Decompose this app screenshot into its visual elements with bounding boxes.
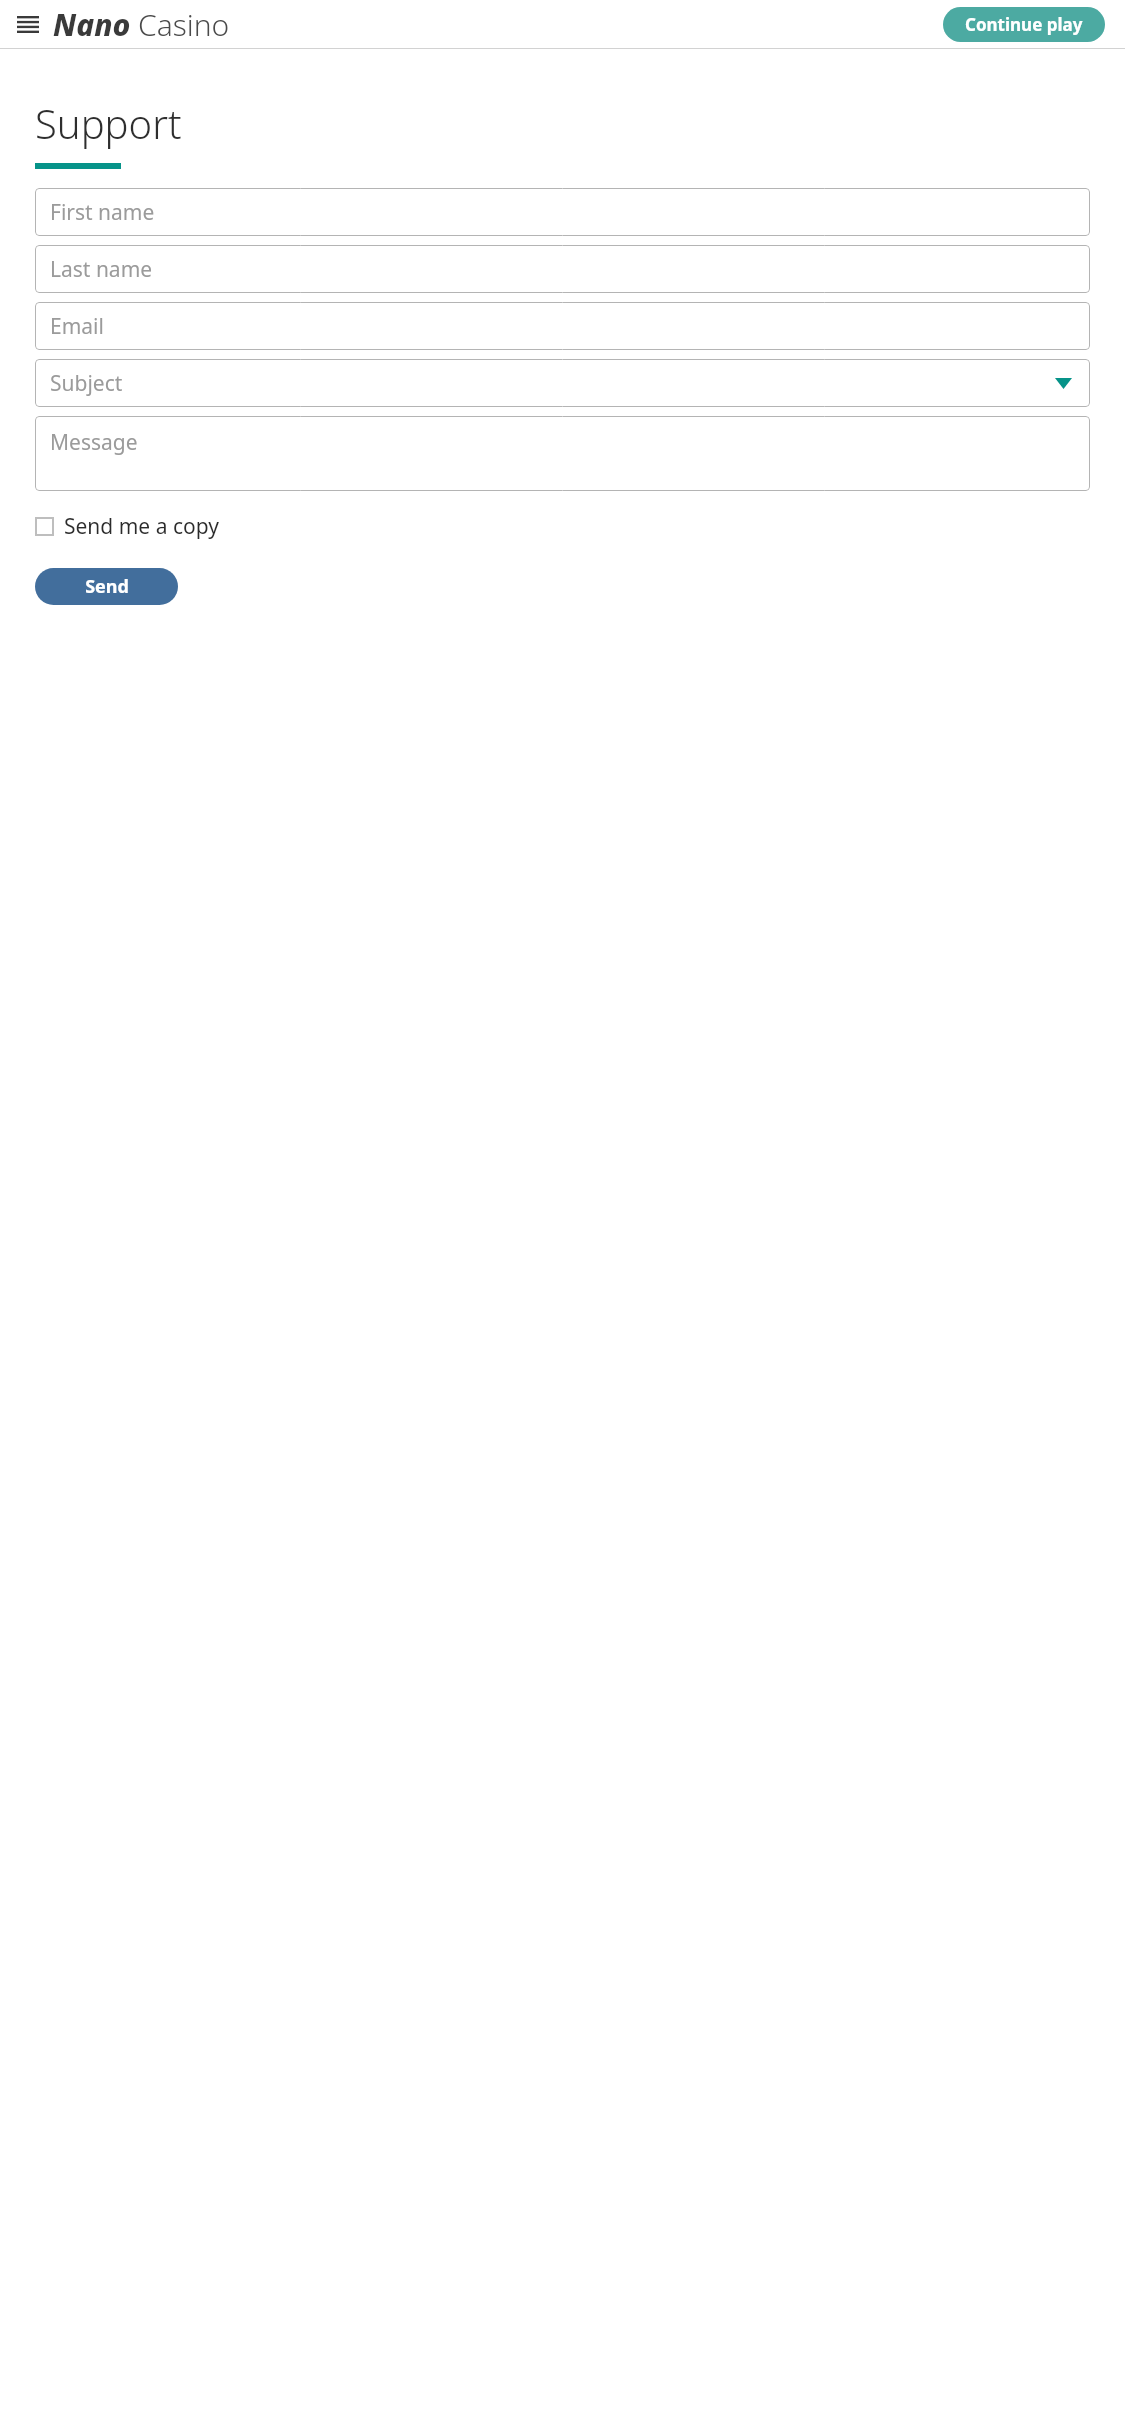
button[interactable]: Open menu bbox=[16, 13, 39, 36]
button[interactable]: Send me a copy bbox=[35, 508, 219, 545]
button[interactable]: Continue play bbox=[943, 7, 1105, 42]
button[interactable]: Message bbox=[35, 416, 1090, 491]
staticText: Casino bbox=[138, 4, 230, 45]
button[interactable]: Subject bbox=[35, 359, 1090, 407]
staticText: First name bbox=[50, 198, 155, 227]
staticText: Email bbox=[50, 312, 104, 341]
staticText: Support bbox=[35, 96, 182, 150]
staticText: Continue play bbox=[965, 13, 1083, 36]
staticText: Message bbox=[50, 428, 138, 457]
button[interactable]: Last name bbox=[35, 245, 1090, 293]
button[interactable]: Send bbox=[35, 568, 178, 605]
staticText: Send me a copy bbox=[64, 512, 219, 541]
staticText: Nano bbox=[53, 4, 131, 45]
staticText: Subject bbox=[50, 369, 123, 398]
button[interactable]: First name bbox=[35, 188, 1090, 236]
staticText: Send bbox=[85, 574, 129, 599]
button[interactable]: Email bbox=[35, 302, 1090, 350]
staticText: Last name bbox=[50, 255, 153, 284]
